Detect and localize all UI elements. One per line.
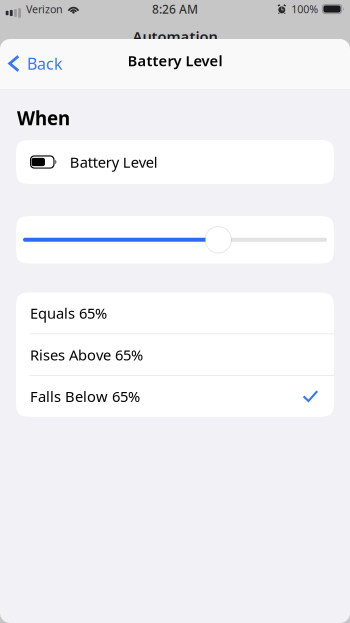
staticText: Battery Level [70, 152, 158, 172]
staticText: When [17, 106, 70, 130]
staticText: 100% [291, 2, 318, 16]
staticText: Equals 65% [30, 303, 107, 323]
staticText: Verizon [26, 2, 63, 16]
button[interactable]: Back [0, 46, 71, 81]
button[interactable]: Battery Level [16, 140, 334, 184]
button[interactable]: Rises Above 65% [16, 334, 334, 375]
staticText: Automation [132, 27, 217, 46]
staticText: Back [27, 53, 63, 74]
staticText: 8:26 AM [152, 1, 198, 17]
staticText: Rises Above 65% [30, 345, 143, 364]
staticText: Falls Below 65% [30, 387, 140, 406]
button[interactable]: Equals 65% [16, 292, 334, 333]
button[interactable]: Falls Below 65% [16, 376, 334, 417]
staticText: Battery Level [127, 51, 222, 70]
